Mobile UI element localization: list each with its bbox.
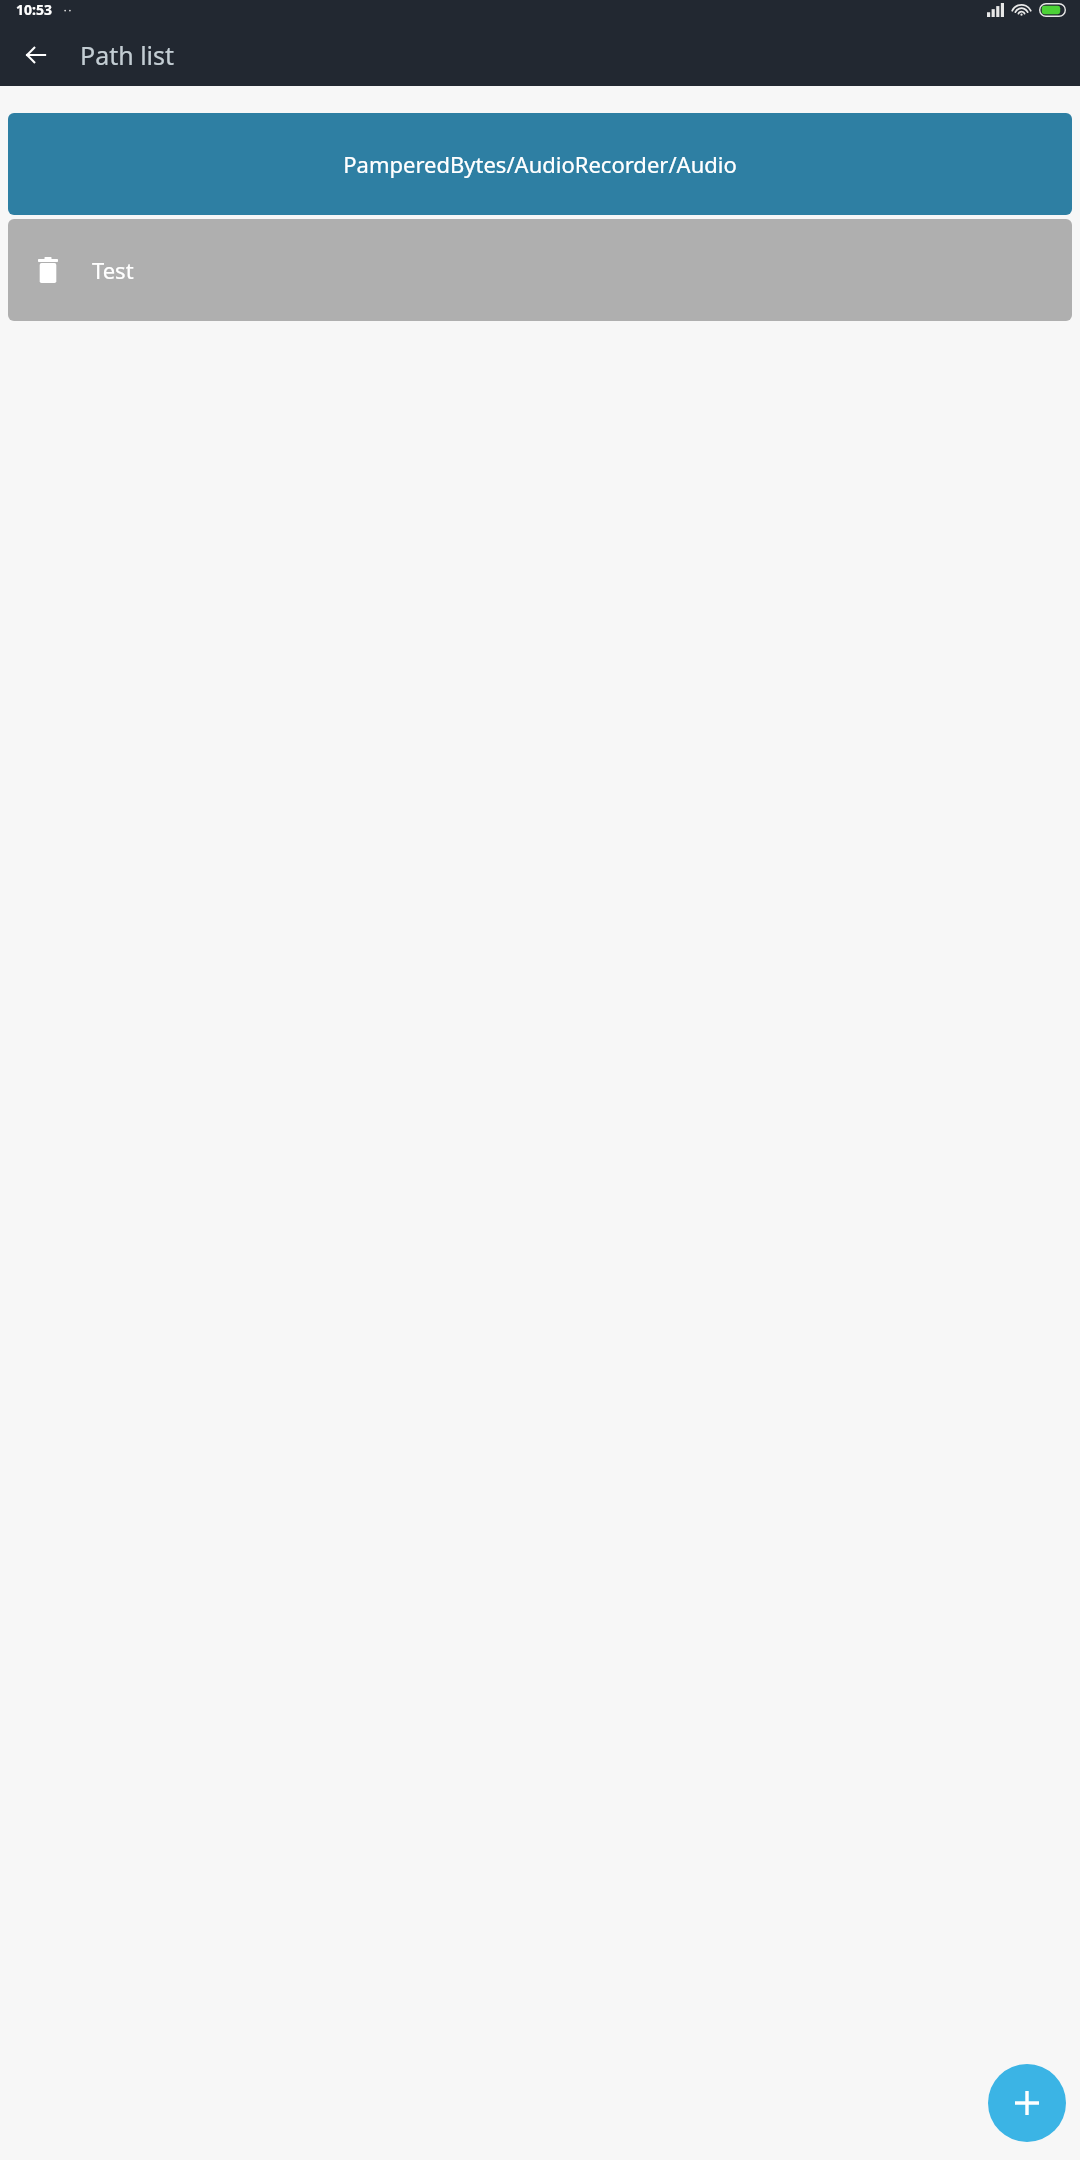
button[interactable]: Back [12, 31, 60, 79]
staticText: Test [92, 255, 134, 285]
button[interactable]: Delete [26, 248, 70, 292]
staticText: PamperedBytes/AudioRecorder/Audio [343, 149, 737, 179]
staticText: Path list [80, 38, 175, 72]
button[interactable]: PamperedBytes/AudioRecorder/Audio [8, 113, 1072, 215]
staticText: 10:53 [16, 0, 52, 19]
button[interactable]: Add [988, 2064, 1066, 2142]
button[interactable]: Delete [8, 219, 1072, 321]
